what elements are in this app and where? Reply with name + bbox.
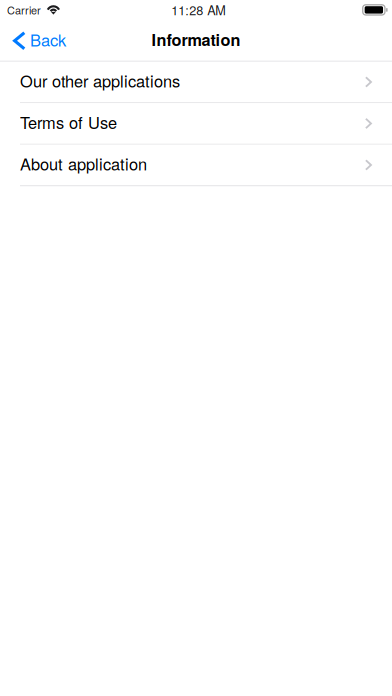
staticText: Carrier <box>7 2 41 18</box>
staticText: Our other applications <box>20 69 180 92</box>
staticText: Information <box>151 28 240 51</box>
button[interactable]: About application <box>0 145 392 186</box>
button[interactable]: Terms of Use <box>0 103 392 145</box>
staticText: About application <box>20 152 147 175</box>
staticText: Terms of Use <box>20 110 117 134</box>
button[interactable]: Our other applications <box>0 62 392 103</box>
staticText: 11:28 AM <box>171 1 226 19</box>
staticText: Back <box>30 27 66 51</box>
button[interactable]: Back <box>0 18 76 63</box>
